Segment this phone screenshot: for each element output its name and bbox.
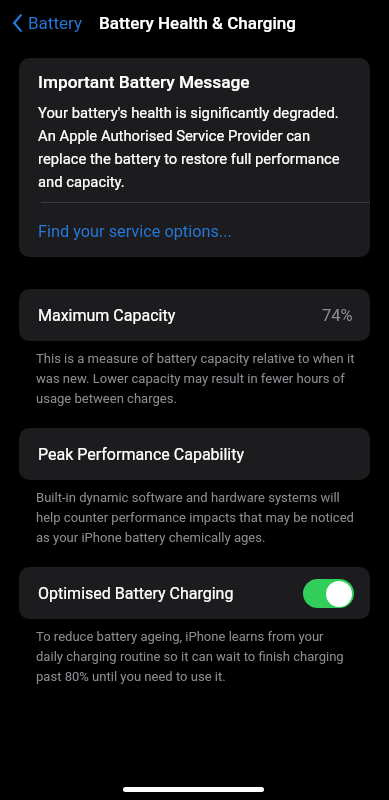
staticText: Optimised Battery Charging: [38, 584, 234, 603]
staticText: Maximum Capacity: [38, 306, 176, 325]
staticText: Important Battery Message: [38, 72, 250, 92]
button[interactable]: Optimised Battery Charging: [303, 579, 354, 608]
staticText: Built-in dynamic software and hardware s…: [36, 486, 354, 546]
staticText: Peak Performance Capability: [38, 445, 245, 464]
staticText: To reduce battery ageing, iPhone learns …: [36, 625, 344, 685]
staticText: Battery: [28, 13, 82, 33]
staticText: 74%: [322, 306, 353, 325]
button[interactable]: Battery: [0, 7, 90, 39]
button[interactable]: Maximum Capacity: [19, 289, 370, 341]
staticText: Find your service options...: [38, 222, 232, 241]
staticText: Battery Health & Charging: [99, 13, 296, 33]
staticText: Your battery's health is significantly d…: [38, 100, 340, 192]
button[interactable]: Peak Performance Capability: [19, 428, 370, 480]
button[interactable]: Find your service options...: [19, 203, 370, 257]
staticText: This is a measure of battery capacity re…: [36, 347, 355, 407]
